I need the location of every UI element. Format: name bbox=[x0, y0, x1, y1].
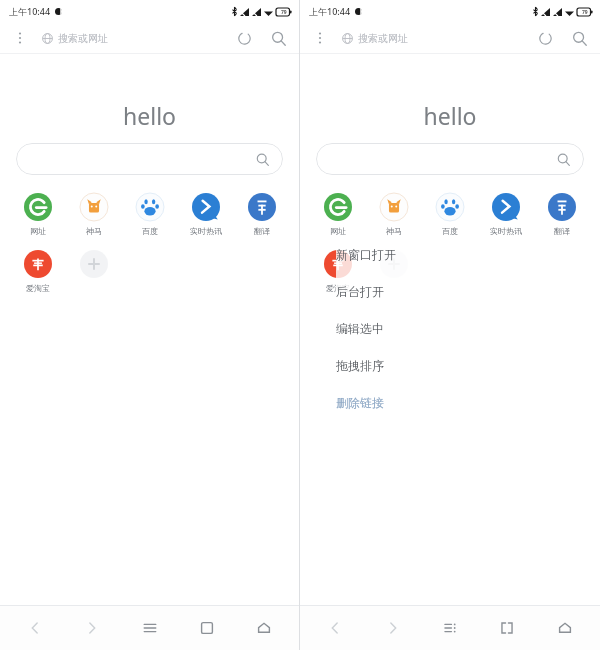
staticText: 删除链接 bbox=[336, 395, 384, 410]
button[interactable]: Tabs bbox=[485, 606, 529, 650]
staticText: 拖拽排序 bbox=[336, 358, 384, 373]
staticText: 新窗口打开 bbox=[336, 247, 396, 262]
staticText: 神马 bbox=[386, 226, 402, 236]
button[interactable]: 拖拽排序 bbox=[336, 347, 486, 384]
button[interactable]: 实时热讯 bbox=[178, 191, 234, 238]
staticText: 搜索或网址 bbox=[358, 32, 408, 45]
button[interactable]: Forward bbox=[70, 606, 114, 650]
staticText: 翻译 bbox=[254, 226, 270, 236]
staticText: 神马 bbox=[86, 226, 102, 236]
button[interactable]: Tabs bbox=[185, 606, 229, 650]
staticText: 实时热讯 bbox=[190, 226, 222, 236]
staticText: 79 bbox=[582, 9, 588, 16]
button[interactable]: Back bbox=[313, 606, 357, 650]
staticText: 79 bbox=[281, 9, 287, 16]
button[interactable]: Refresh bbox=[532, 25, 558, 51]
staticText: 网址 bbox=[330, 226, 346, 236]
button[interactable]: 网址 bbox=[310, 191, 366, 238]
staticText: 实时热讯 bbox=[490, 226, 522, 236]
button[interactable]: 编辑选中 bbox=[336, 310, 486, 347]
button[interactable]: 爱淘宝 bbox=[10, 248, 66, 295]
button[interactable]: 实时热讯 bbox=[478, 191, 534, 238]
button[interactable]: Menu bbox=[428, 606, 472, 650]
button[interactable]: 神马 bbox=[366, 191, 422, 238]
button[interactable]: 搜索或网址 bbox=[42, 32, 108, 45]
button[interactable]: Search box bbox=[16, 143, 283, 175]
button[interactable]: Back bbox=[13, 606, 57, 650]
staticText: 编辑选中 bbox=[336, 321, 384, 336]
staticText: 翻译 bbox=[554, 226, 570, 236]
button[interactable]: Search box bbox=[316, 143, 584, 175]
staticText: hello bbox=[0, 100, 299, 131]
button[interactable]: Forward bbox=[371, 606, 415, 650]
button[interactable]: Add shortcut bbox=[366, 248, 422, 285]
button[interactable]: 爱淘宝 bbox=[310, 248, 366, 295]
staticText: 爱淘宝 bbox=[26, 283, 50, 293]
button[interactable]: Refresh bbox=[231, 25, 257, 51]
staticText: 网址 bbox=[30, 226, 46, 236]
button[interactable]: 神马 bbox=[66, 191, 122, 238]
button[interactable]: 后台打开 bbox=[336, 273, 486, 310]
button[interactable]: 删除链接 bbox=[336, 384, 486, 421]
button[interactable]: Search bbox=[265, 25, 291, 51]
button[interactable]: Add shortcut bbox=[66, 248, 122, 285]
staticText: 搜索或网址 bbox=[58, 32, 108, 45]
staticText: 后台打开 bbox=[336, 284, 384, 299]
button[interactable]: 新窗口打开 bbox=[336, 236, 486, 273]
button[interactable]: Menu bbox=[128, 606, 172, 650]
staticText: hello bbox=[300, 100, 600, 131]
button[interactable]: Home bbox=[543, 606, 587, 650]
button[interactable]: More options bbox=[306, 24, 334, 52]
staticText: 上午10:44 bbox=[309, 5, 351, 17]
staticText: 百度 bbox=[442, 226, 458, 236]
button[interactable]: Search bbox=[566, 25, 592, 51]
button[interactable]: 翻译 bbox=[534, 191, 590, 238]
button[interactable]: 网址 bbox=[10, 191, 66, 238]
staticText: 上午10:44 bbox=[9, 5, 51, 17]
button[interactable]: Home bbox=[242, 606, 286, 650]
staticText: 爱淘宝 bbox=[326, 283, 350, 293]
button[interactable]: More options bbox=[6, 24, 34, 52]
button[interactable]: 搜索或网址 bbox=[342, 32, 408, 45]
button[interactable]: 翻译 bbox=[234, 191, 289, 238]
staticText: 百度 bbox=[142, 226, 158, 236]
button[interactable]: 百度 bbox=[122, 191, 178, 238]
button[interactable]: 百度 bbox=[422, 191, 478, 238]
